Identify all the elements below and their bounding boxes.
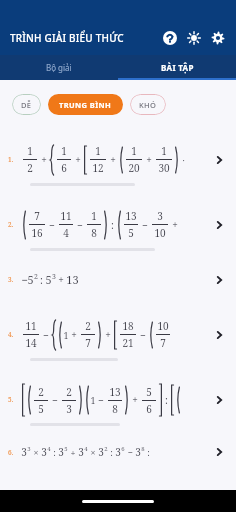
staticText: 2	[27, 161, 33, 175]
staticText: +	[71, 328, 77, 342]
staticText: 4	[84, 445, 88, 453]
staticText: 4	[63, 226, 69, 240]
staticText: 2	[66, 385, 72, 399]
staticText: +	[146, 153, 152, 167]
button[interactable]: Help	[160, 28, 180, 48]
staticText: 5	[146, 385, 152, 399]
staticText: 2	[38, 385, 44, 399]
staticText: 6	[121, 445, 125, 453]
staticText: 1	[95, 144, 101, 158]
staticText: 2.	[8, 220, 21, 229]
staticText: +	[70, 446, 76, 458]
staticText: +	[105, 328, 111, 342]
staticText: 1.	[8, 155, 21, 164]
staticText: 21	[122, 336, 134, 350]
staticText: 13	[109, 385, 121, 399]
staticText: −	[49, 218, 55, 232]
staticText: 11	[25, 319, 37, 333]
staticText: :	[111, 218, 114, 232]
staticText: 2	[34, 272, 38, 282]
staticText: 12	[92, 161, 104, 175]
staticText: BÀI TẬP	[161, 62, 194, 73]
staticText: 6.	[8, 448, 21, 457]
staticText: 16	[31, 226, 43, 240]
button[interactable]: 1.	[0, 127, 236, 192]
staticText: 3	[41, 445, 47, 459]
staticText: −	[77, 218, 83, 232]
staticText: 4.	[8, 330, 21, 339]
staticText: 3	[58, 445, 64, 459]
staticText: 30	[158, 161, 170, 175]
staticText: 5	[64, 445, 68, 453]
staticText: 3.	[8, 275, 21, 284]
staticText: 3	[115, 445, 121, 459]
staticText: +	[132, 393, 138, 407]
staticText: 7	[160, 336, 166, 350]
staticText: −	[127, 446, 133, 458]
staticText: 2	[104, 445, 108, 453]
button[interactable]: 3.	[0, 257, 236, 302]
staticText: 3	[27, 445, 31, 453]
staticText: 6	[146, 402, 152, 416]
button[interactable]: TRUNG BÌNH	[48, 94, 123, 115]
button[interactable]: 5.	[0, 367, 236, 432]
staticText: 18	[122, 319, 134, 333]
staticText: TRUNG BÌNH	[59, 100, 112, 110]
staticText: 5	[45, 272, 52, 287]
staticText: 8	[141, 445, 145, 453]
staticText: 7	[34, 209, 40, 223]
staticText: −	[52, 393, 58, 407]
staticText: 13	[125, 209, 137, 223]
staticText: 5.	[8, 395, 21, 404]
button[interactable]: Settings	[208, 28, 228, 48]
staticText: DỄ	[21, 100, 32, 110]
button[interactable]: 6.	[0, 432, 236, 472]
staticText: 3	[66, 402, 72, 416]
staticText: 20	[128, 161, 140, 175]
staticText: +	[41, 153, 47, 167]
staticText: 14	[25, 336, 37, 350]
button[interactable]: 4.	[0, 302, 236, 367]
staticText: :	[40, 273, 43, 287]
staticText: 13	[66, 272, 79, 287]
staticText: 6	[61, 161, 67, 175]
staticText: KHÓ	[139, 100, 157, 110]
button[interactable]: KHÓ	[130, 94, 166, 115]
staticText: 5	[128, 226, 134, 240]
staticText: 1	[91, 209, 97, 223]
staticText: 5	[38, 402, 44, 416]
button[interactable]: DỄ	[12, 94, 41, 115]
staticText: +	[110, 153, 116, 167]
button[interactable]: BÀI TẬP	[118, 55, 236, 80]
staticText: ·	[182, 154, 185, 166]
staticText: −	[142, 218, 148, 232]
staticText: 3	[135, 445, 141, 459]
staticText: TRÌNH GIẢI BIỂU THỨC	[10, 31, 160, 45]
staticText: 3	[157, 209, 163, 223]
staticText: 3	[78, 445, 84, 459]
staticText: ×	[33, 446, 39, 458]
button[interactable]: Bộ giải	[0, 55, 118, 80]
staticText: +	[58, 273, 64, 287]
staticText: 8	[112, 402, 118, 416]
staticText: 2	[85, 319, 91, 333]
staticText: :	[53, 446, 56, 458]
button[interactable]: 2.	[0, 192, 236, 257]
button[interactable]: Brightness	[184, 28, 204, 48]
staticText: −	[98, 393, 104, 407]
staticText: 10	[157, 319, 169, 333]
staticText: Bộ giải	[46, 62, 72, 73]
staticText: 1	[161, 144, 167, 158]
staticText: −5	[21, 272, 34, 287]
staticText: 8	[91, 226, 97, 240]
staticText: ×	[90, 446, 96, 458]
staticText: 4	[47, 445, 51, 453]
staticText: 11	[60, 209, 72, 223]
staticText: +	[172, 218, 178, 232]
staticText: :	[147, 446, 150, 458]
staticText: 3	[52, 272, 56, 282]
staticText: 1	[27, 144, 33, 158]
staticText: 3	[21, 445, 27, 459]
staticText: 1	[61, 144, 67, 158]
staticText: −	[140, 328, 146, 342]
